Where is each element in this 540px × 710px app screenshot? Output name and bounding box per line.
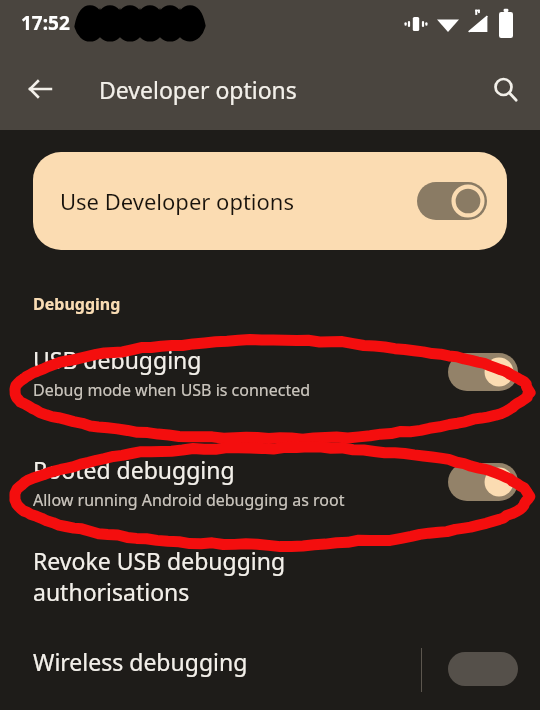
- button[interactable]: Rooted debugging: [0, 446, 540, 518]
- button[interactable]: Revoke USB debugging authorisations: [0, 545, 540, 608]
- staticText: Developer options: [99, 74, 297, 105]
- button[interactable]: Wireless debugging: [0, 646, 540, 706]
- button[interactable]: Toggle: [417, 182, 487, 220]
- staticText: Wireless debugging: [33, 646, 421, 677]
- button[interactable]: Toggle: [448, 353, 518, 391]
- button[interactable]: [448, 652, 518, 686]
- staticText: USB debugging: [33, 344, 202, 375]
- staticText: Revoke USB debugging authorisations: [33, 545, 420, 608]
- staticText: 17:52: [21, 10, 70, 36]
- staticText: Debugging: [33, 293, 121, 315]
- button[interactable]: Search: [478, 62, 532, 116]
- button[interactable]: USB debugging: [0, 336, 540, 408]
- button[interactable]: Back: [12, 61, 68, 117]
- button[interactable]: Toggle: [448, 463, 518, 501]
- staticText: Allow running Android debugging as root: [33, 489, 345, 511]
- button[interactable]: Use Developer options: [33, 152, 507, 250]
- staticText: Rooted debugging: [33, 454, 235, 485]
- staticText: Use Developer options: [60, 186, 294, 216]
- staticText: Debug mode when USB is connected: [33, 379, 311, 401]
